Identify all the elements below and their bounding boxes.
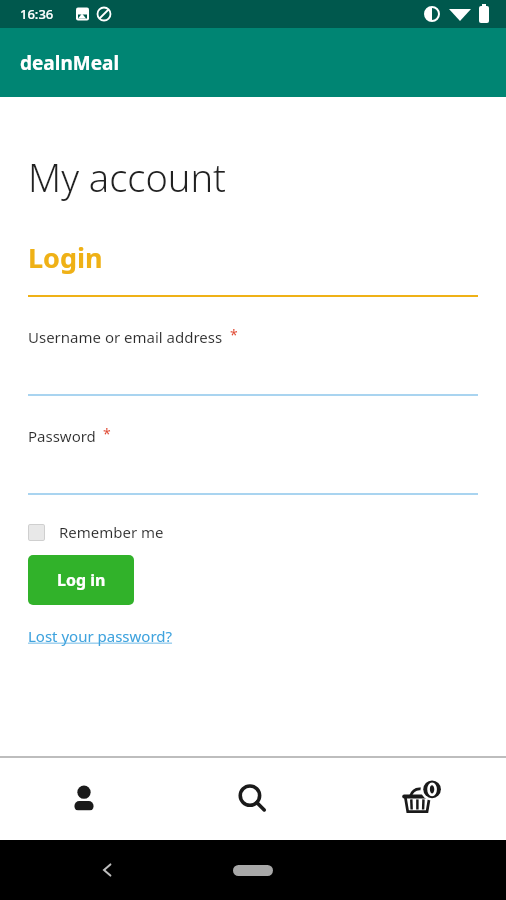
staticText: Password [28, 426, 96, 446]
staticText: My account [28, 151, 226, 203]
button[interactable]: Account [0, 758, 168, 840]
staticText: dealnMeal [20, 50, 120, 76]
button[interactable]: Log in [28, 555, 134, 605]
staticText: * [230, 325, 238, 344]
button[interactable]: Cart, 0 items [337, 758, 506, 840]
staticText: Username or email address [28, 327, 223, 347]
staticText: 16:36 [20, 5, 54, 23]
staticText: Remember me [59, 522, 164, 542]
button[interactable]: Home [233, 865, 273, 876]
button[interactable]: Lost your password? [28, 626, 173, 646]
button[interactable]: Remember me [28, 522, 164, 542]
staticText: * [103, 424, 111, 443]
staticText: Lost your password? [28, 626, 173, 646]
button[interactable]: Back [98, 860, 118, 880]
staticText: Log in [57, 569, 106, 591]
button[interactable]: Search [168, 758, 337, 840]
staticText: Login [28, 239, 103, 276]
